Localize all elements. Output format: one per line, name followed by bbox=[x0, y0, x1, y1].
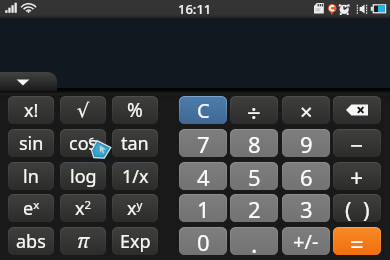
button[interactable]: x2 bbox=[60, 194, 106, 222]
button[interactable]: cos bbox=[60, 129, 106, 157]
staticText: Exp bbox=[120, 229, 151, 254]
button[interactable]: ÷ bbox=[230, 96, 278, 124]
staticText: +/- bbox=[293, 228, 319, 255]
button[interactable]: ex bbox=[8, 194, 54, 222]
staticText: abs bbox=[16, 229, 46, 254]
staticText: xy bbox=[127, 196, 143, 221]
button[interactable]: sin bbox=[8, 129, 54, 157]
staticText: 6 bbox=[300, 162, 313, 190]
staticText: π bbox=[77, 228, 90, 254]
button[interactable]: Exp bbox=[112, 227, 158, 255]
button[interactable]: xy bbox=[112, 194, 158, 222]
button[interactable]: . bbox=[230, 227, 278, 255]
staticText: ÷ bbox=[247, 96, 261, 124]
staticText: 4 bbox=[197, 162, 210, 190]
button[interactable]: tan bbox=[112, 129, 158, 157]
staticText: − bbox=[350, 129, 364, 157]
button[interactable]: 5 bbox=[230, 162, 278, 190]
button[interactable]: √ bbox=[60, 96, 106, 124]
staticText: = bbox=[350, 227, 364, 255]
staticText: x! bbox=[24, 98, 39, 123]
staticText: 3 bbox=[300, 194, 313, 222]
button[interactable]: × bbox=[282, 96, 330, 124]
staticText: 16:11 bbox=[178, 0, 212, 18]
staticText: 1 bbox=[197, 194, 210, 222]
staticText: log bbox=[70, 164, 97, 189]
button[interactable]: 4 bbox=[179, 162, 227, 190]
button[interactable]: 1/x bbox=[112, 162, 158, 190]
button[interactable]: + bbox=[333, 162, 381, 190]
staticText: x2 bbox=[75, 196, 92, 221]
staticText: 0 bbox=[197, 227, 210, 255]
staticText: ln bbox=[23, 164, 39, 189]
staticText: . bbox=[251, 227, 258, 255]
button[interactable]: ( ) bbox=[333, 194, 381, 222]
button[interactable]: 3 bbox=[282, 194, 330, 222]
button[interactable]: 2 bbox=[230, 194, 278, 222]
staticText: sin bbox=[19, 131, 44, 156]
button[interactable]: π bbox=[60, 227, 106, 255]
staticText: 1/x bbox=[122, 164, 149, 189]
staticText: C bbox=[197, 97, 210, 124]
staticText: 8 bbox=[248, 129, 261, 157]
staticText: ex bbox=[23, 196, 40, 221]
staticText: 7 bbox=[197, 129, 210, 157]
staticText: tan bbox=[121, 131, 149, 156]
button[interactable]: ln bbox=[8, 162, 54, 190]
button[interactable]: Backspace bbox=[333, 96, 381, 124]
staticText: × bbox=[300, 96, 313, 124]
staticText: 9 bbox=[300, 129, 313, 157]
staticText: mobilewhack.com bbox=[58, 157, 143, 171]
staticText: 5 bbox=[248, 162, 261, 190]
button[interactable]: % bbox=[112, 96, 158, 124]
button[interactable]: 6 bbox=[282, 162, 330, 190]
button[interactable]: abs bbox=[8, 227, 54, 255]
button[interactable]: = bbox=[333, 227, 381, 255]
staticText: ( ) bbox=[345, 194, 370, 222]
button[interactable]: 0 bbox=[179, 227, 227, 255]
staticText: cos bbox=[69, 131, 98, 156]
button[interactable]: − bbox=[333, 129, 381, 157]
button[interactable]: 7 bbox=[179, 129, 227, 157]
staticText: 2 bbox=[248, 194, 261, 222]
staticText: + bbox=[350, 162, 364, 190]
button[interactable]: x! bbox=[8, 96, 54, 124]
button[interactable]: 1 bbox=[179, 194, 227, 222]
button[interactable]: 8 bbox=[230, 129, 278, 157]
button[interactable]: +/- bbox=[282, 227, 330, 255]
button[interactable]: C bbox=[179, 96, 227, 124]
button[interactable]: log bbox=[60, 162, 106, 190]
button[interactable]: Show history bbox=[0, 72, 57, 91]
staticText: √ bbox=[77, 99, 90, 121]
button[interactable]: 9 bbox=[282, 129, 330, 157]
staticText: % bbox=[127, 97, 143, 123]
